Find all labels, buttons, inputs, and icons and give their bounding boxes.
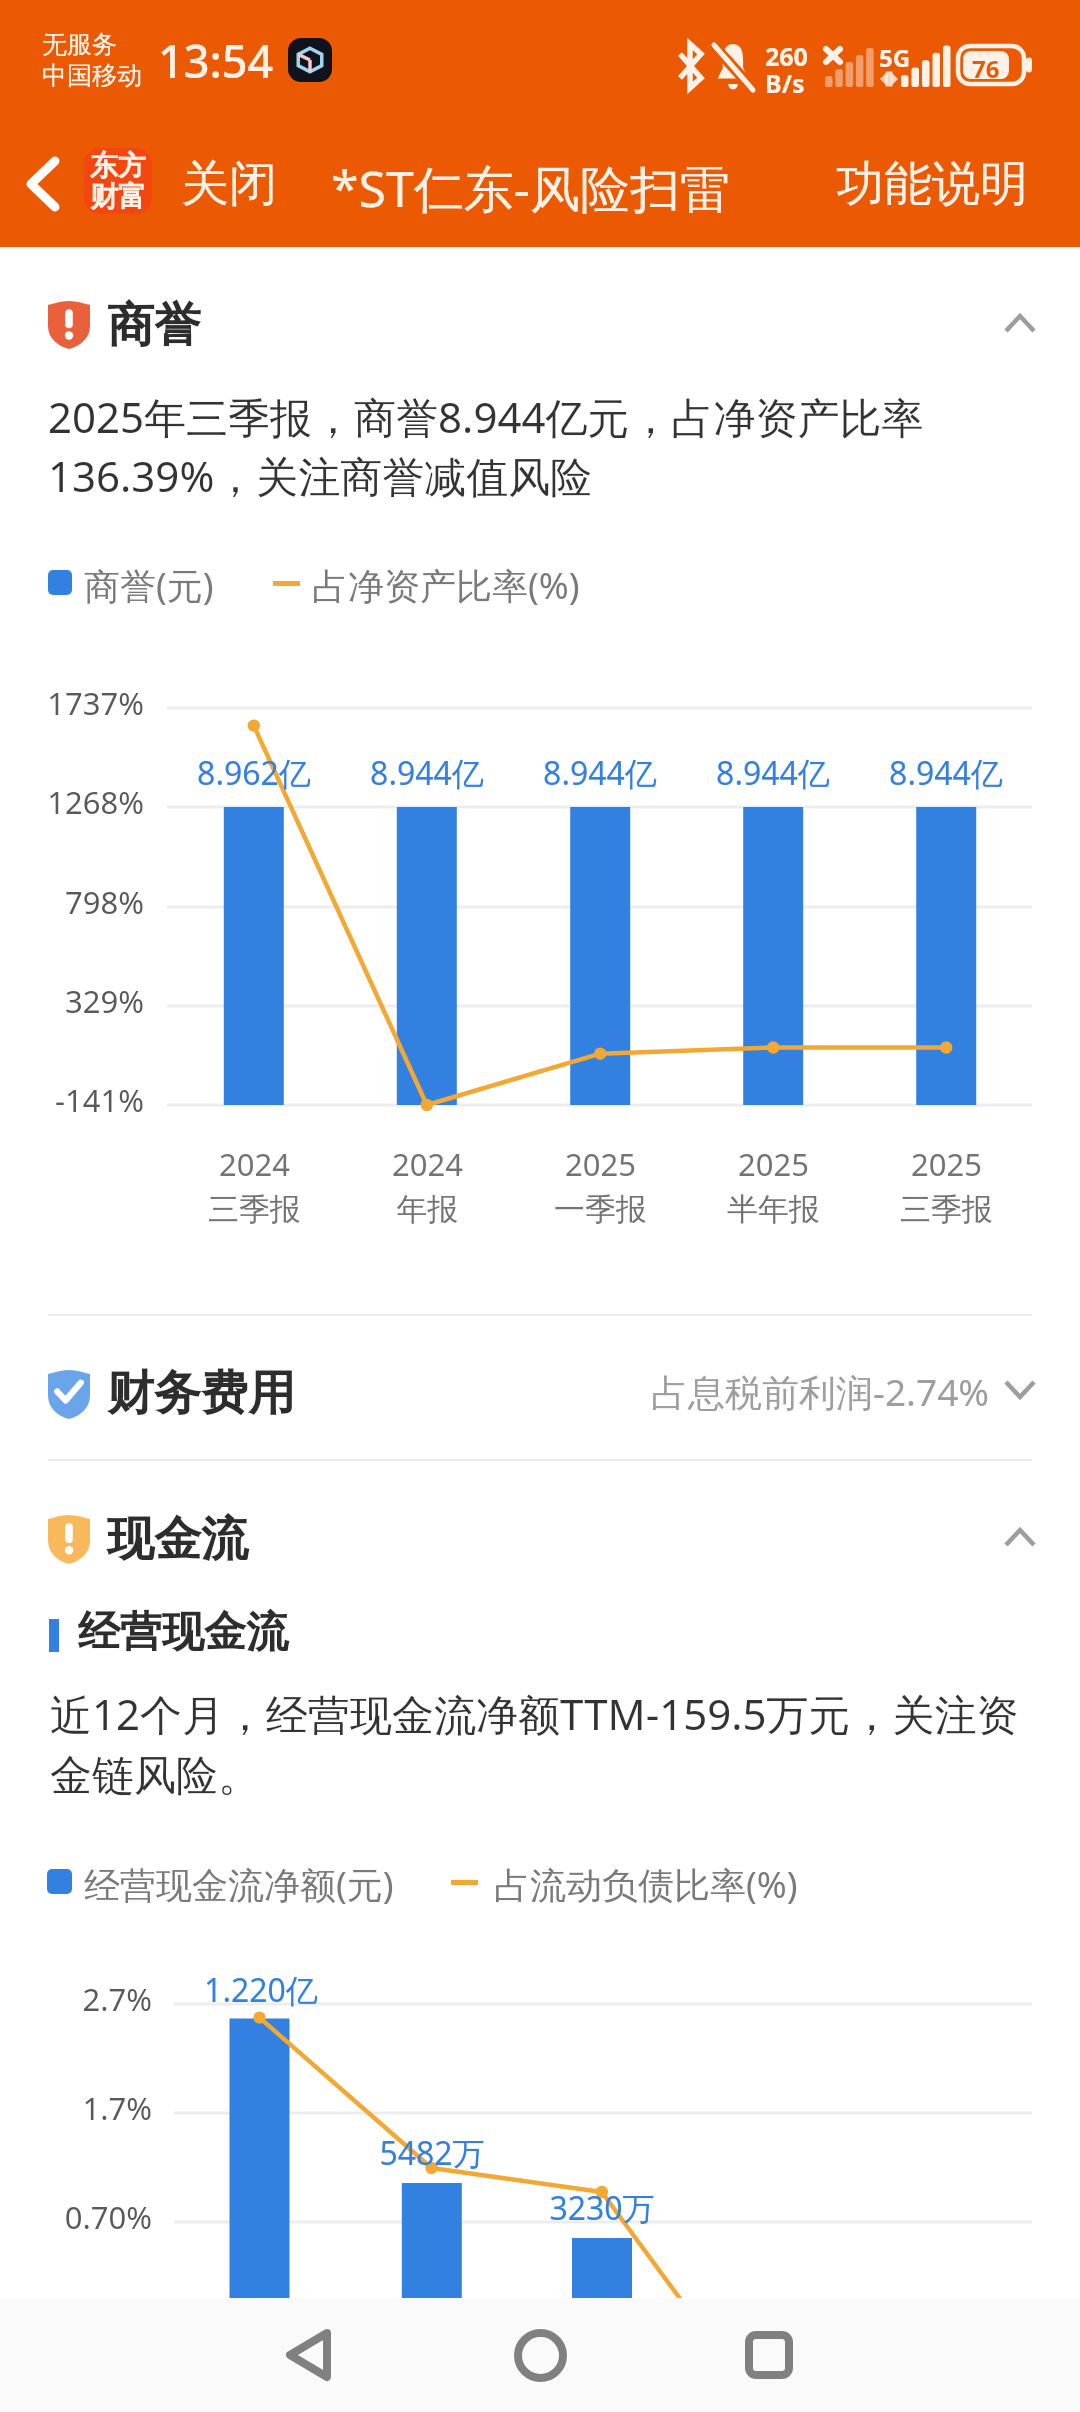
button[interactable]: Back bbox=[3, 143, 83, 225]
staticText: 1268% bbox=[47, 781, 144, 823]
button[interactable]: Collapse 商誉 bbox=[988, 293, 1052, 353]
staticText: 经营现金流净额(元) bbox=[84, 1860, 394, 1909]
button[interactable]: Back bbox=[232, 2298, 384, 2412]
button[interactable]: 功能说明 bbox=[824, 143, 1040, 225]
staticText: *ST仁东-风险扫雷 bbox=[331, 154, 730, 222]
button[interactable] bbox=[40, 280, 1040, 370]
staticText: 8.962亿 bbox=[197, 751, 311, 795]
button[interactable]: Home bbox=[464, 2298, 616, 2412]
staticText: 2025 三季报 bbox=[900, 1143, 993, 1229]
staticText: 13:54 bbox=[158, 30, 274, 91]
staticText: 0.70% bbox=[64, 2196, 152, 2238]
staticText: 近12个月，经营现金流净额TTM-159.5万元，关注资金链风险。 bbox=[50, 1685, 1035, 1802]
staticText: 76 bbox=[972, 52, 1000, 85]
staticText: 财务费用 bbox=[107, 1364, 295, 1423]
staticText: -141% bbox=[55, 1079, 144, 1121]
staticText: 8.944亿 bbox=[543, 751, 657, 795]
staticText: 2025 半年报 bbox=[727, 1143, 820, 1229]
button[interactable]: Expand 财务费用 bbox=[988, 1359, 1052, 1419]
staticText: 798% bbox=[65, 881, 144, 923]
staticText: 关闭 bbox=[181, 154, 277, 214]
staticText: 1.7% bbox=[82, 2087, 152, 2129]
staticText: 东方 财富 bbox=[90, 148, 146, 214]
staticText: 8.944亿 bbox=[370, 751, 484, 795]
button[interactable]: Collapse 现金流 bbox=[988, 1507, 1052, 1567]
staticText: 占流动负债比率(%) bbox=[494, 1860, 798, 1909]
staticText: 占净资产比率(%) bbox=[312, 561, 580, 610]
staticText: 1737% bbox=[47, 682, 144, 724]
staticText: 260 bbox=[765, 39, 808, 73]
staticText: 功能说明 bbox=[836, 154, 1028, 214]
staticText: 329% bbox=[65, 980, 144, 1022]
button[interactable] bbox=[0, 1309, 1080, 1457]
staticText: 无服务 bbox=[42, 29, 117, 60]
staticText: 2024 三季报 bbox=[208, 1143, 301, 1229]
staticText: 2.7% bbox=[82, 1978, 152, 2020]
button[interactable] bbox=[40, 1494, 1040, 1584]
staticText: 占息税前利润-2.74% bbox=[651, 1366, 990, 1417]
staticText: B/s bbox=[765, 66, 805, 100]
staticText: 8.944亿 bbox=[716, 751, 830, 795]
staticText: 商誉 bbox=[107, 296, 201, 355]
staticText: 经营现金流 bbox=[78, 1606, 288, 1659]
staticText: 2025年三季报，商誉8.944亿元，占净资产比率136.39%，关注商誉减值风… bbox=[48, 388, 1038, 504]
staticText: 2025 一季报 bbox=[554, 1143, 647, 1229]
staticText: 5482万 bbox=[379, 2131, 485, 2175]
staticText: 5G bbox=[879, 41, 911, 74]
button[interactable]: 关闭 bbox=[170, 143, 288, 225]
staticText: 2024 年报 bbox=[392, 1143, 463, 1229]
button[interactable]: Recent apps bbox=[693, 2298, 845, 2412]
staticText: 8.944亿 bbox=[889, 751, 1003, 795]
staticText: 中国移动 bbox=[42, 60, 142, 91]
staticText: 商誉(元) bbox=[84, 561, 214, 610]
staticText: 3230万 bbox=[549, 2186, 655, 2230]
staticText: 1.220亿 bbox=[204, 1968, 318, 2012]
staticText: 现金流 bbox=[107, 1510, 248, 1569]
